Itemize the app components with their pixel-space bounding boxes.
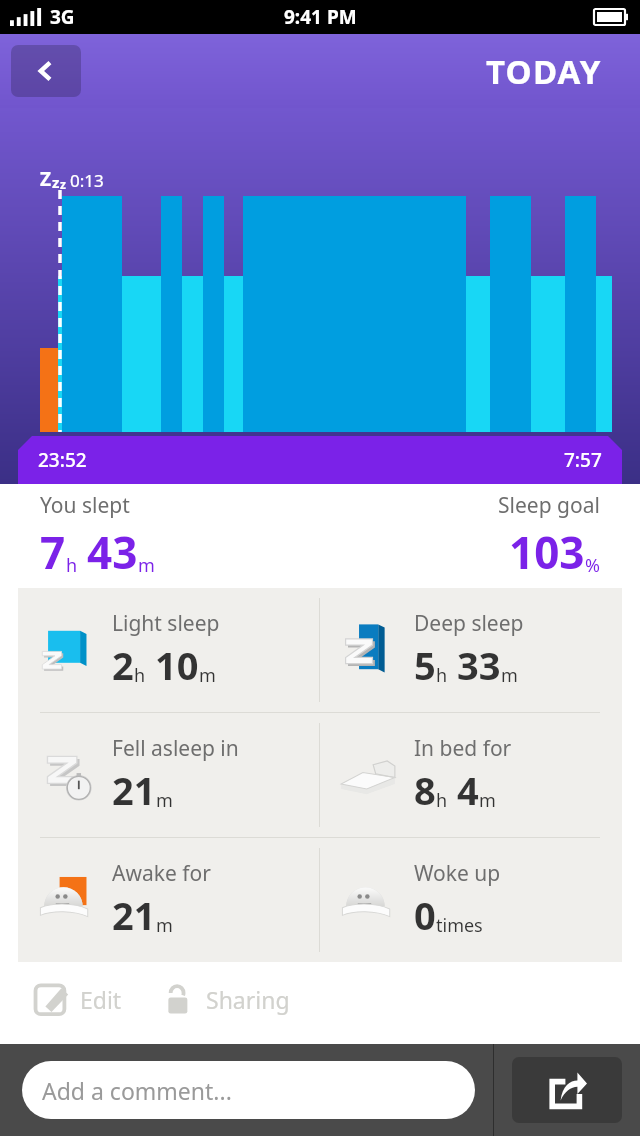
button[interactable]: Fell asleep in — [18, 713, 319, 837]
staticText: z — [60, 176, 66, 192]
staticText: Sharing — [206, 984, 290, 1015]
staticText: 8 — [414, 764, 436, 816]
staticText: 3G — [50, 4, 75, 30]
staticText: 9:41 PM — [284, 4, 357, 30]
staticText: m — [156, 913, 173, 938]
staticText: times — [436, 913, 483, 938]
staticText: h — [66, 553, 78, 578]
staticText: Sleep goal — [498, 491, 600, 520]
staticText: 21 — [112, 764, 156, 816]
staticText: 7 — [40, 522, 66, 582]
staticText: Deep sleep — [414, 609, 524, 638]
button[interactable]: Back — [11, 45, 81, 97]
staticText: h — [436, 788, 448, 813]
staticText: h — [134, 663, 146, 688]
staticText: 4 — [457, 764, 479, 816]
staticText: 5 — [414, 639, 436, 691]
button[interactable]: Awake for — [18, 838, 319, 962]
staticText: Woke up — [414, 859, 501, 888]
staticText: z — [52, 172, 60, 192]
button[interactable]: Add a comment... — [22, 1061, 475, 1119]
staticText: h — [436, 663, 448, 688]
button[interactable]: Edit — [30, 976, 126, 1022]
staticText: m — [156, 788, 173, 813]
staticText: 0:13 — [70, 169, 104, 192]
staticText: 43 — [87, 522, 138, 582]
staticText: % — [585, 553, 600, 578]
staticText: Z — [40, 166, 52, 192]
staticText: TODAY — [486, 49, 602, 94]
staticText: m — [138, 553, 155, 578]
staticText: 2 — [112, 639, 134, 691]
button[interactable]: Sharing — [156, 976, 294, 1022]
staticText: Fell asleep in — [112, 734, 239, 763]
staticText: 33 — [457, 639, 501, 691]
button[interactable]: Woke up — [320, 838, 622, 962]
button[interactable]: Deep sleep — [320, 588, 622, 712]
staticText: m — [199, 663, 216, 688]
staticText: 0 — [414, 889, 436, 941]
staticText: 23:52 — [38, 447, 87, 473]
staticText: 21 — [112, 889, 156, 941]
staticText: 10 — [155, 639, 199, 691]
staticText: 7:57 — [564, 447, 602, 473]
staticText: Add a comment... — [42, 1075, 232, 1106]
button[interactable]: Share — [512, 1057, 622, 1123]
staticText: You slept — [40, 491, 130, 520]
button[interactable]: In bed for — [320, 713, 622, 837]
staticText: 103 — [509, 522, 585, 582]
staticText: In bed for — [414, 734, 512, 763]
staticText: Awake for — [112, 859, 211, 888]
staticText: m — [479, 788, 496, 813]
staticText: Edit — [80, 984, 122, 1015]
staticText: Light sleep — [112, 609, 220, 638]
staticText: m — [501, 663, 518, 688]
button[interactable]: Light sleep — [18, 588, 319, 712]
